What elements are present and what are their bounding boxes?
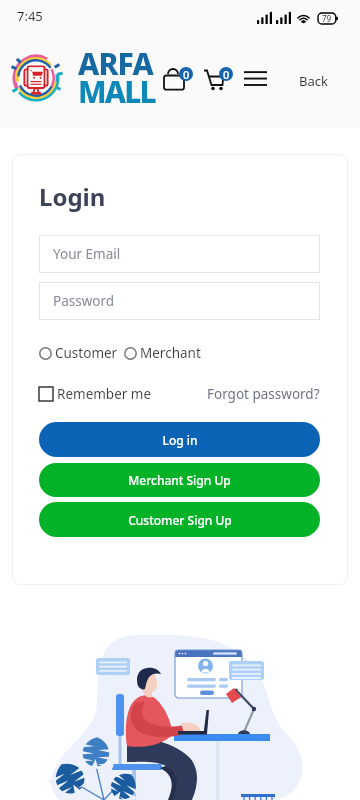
button[interactable]: Menu xyxy=(240,68,270,88)
staticText: Password xyxy=(53,292,115,310)
button[interactable]: Forgot password? xyxy=(207,385,320,403)
staticText: Customer Sign Up xyxy=(128,512,232,528)
staticText: Merchant Sign Up xyxy=(128,472,231,488)
button[interactable]: Log in xyxy=(39,422,320,457)
staticText: Forgot password? xyxy=(207,385,320,403)
staticText: Remember me xyxy=(57,385,152,403)
button[interactable]: Cart xyxy=(200,62,234,92)
button[interactable]: Remember me xyxy=(39,385,152,403)
staticText: Customer xyxy=(55,344,118,362)
staticText: 0 xyxy=(183,67,190,81)
button[interactable]: Merchant xyxy=(124,344,201,362)
staticText: Log in xyxy=(162,432,198,448)
staticText: Merchant xyxy=(140,344,201,362)
staticText: Back xyxy=(299,72,328,90)
staticText: 0 xyxy=(223,67,230,81)
button[interactable]: ARFA xyxy=(9,37,155,119)
staticText: 79 xyxy=(322,13,332,24)
button[interactable]: Your Email xyxy=(39,235,320,273)
staticText: ARFA xyxy=(78,43,153,84)
staticText: Your Email xyxy=(53,245,121,263)
staticText: MALL xyxy=(78,71,155,112)
button[interactable]: Wishlist xyxy=(160,62,192,92)
staticText: Login xyxy=(39,180,106,213)
button[interactable]: Merchant Sign Up xyxy=(39,463,320,497)
staticText: 7:45 xyxy=(17,7,43,25)
button[interactable]: Customer xyxy=(39,344,118,362)
button[interactable]: Back xyxy=(291,66,336,96)
button[interactable]: Customer Sign Up xyxy=(39,502,320,537)
button[interactable]: Password xyxy=(39,282,320,320)
